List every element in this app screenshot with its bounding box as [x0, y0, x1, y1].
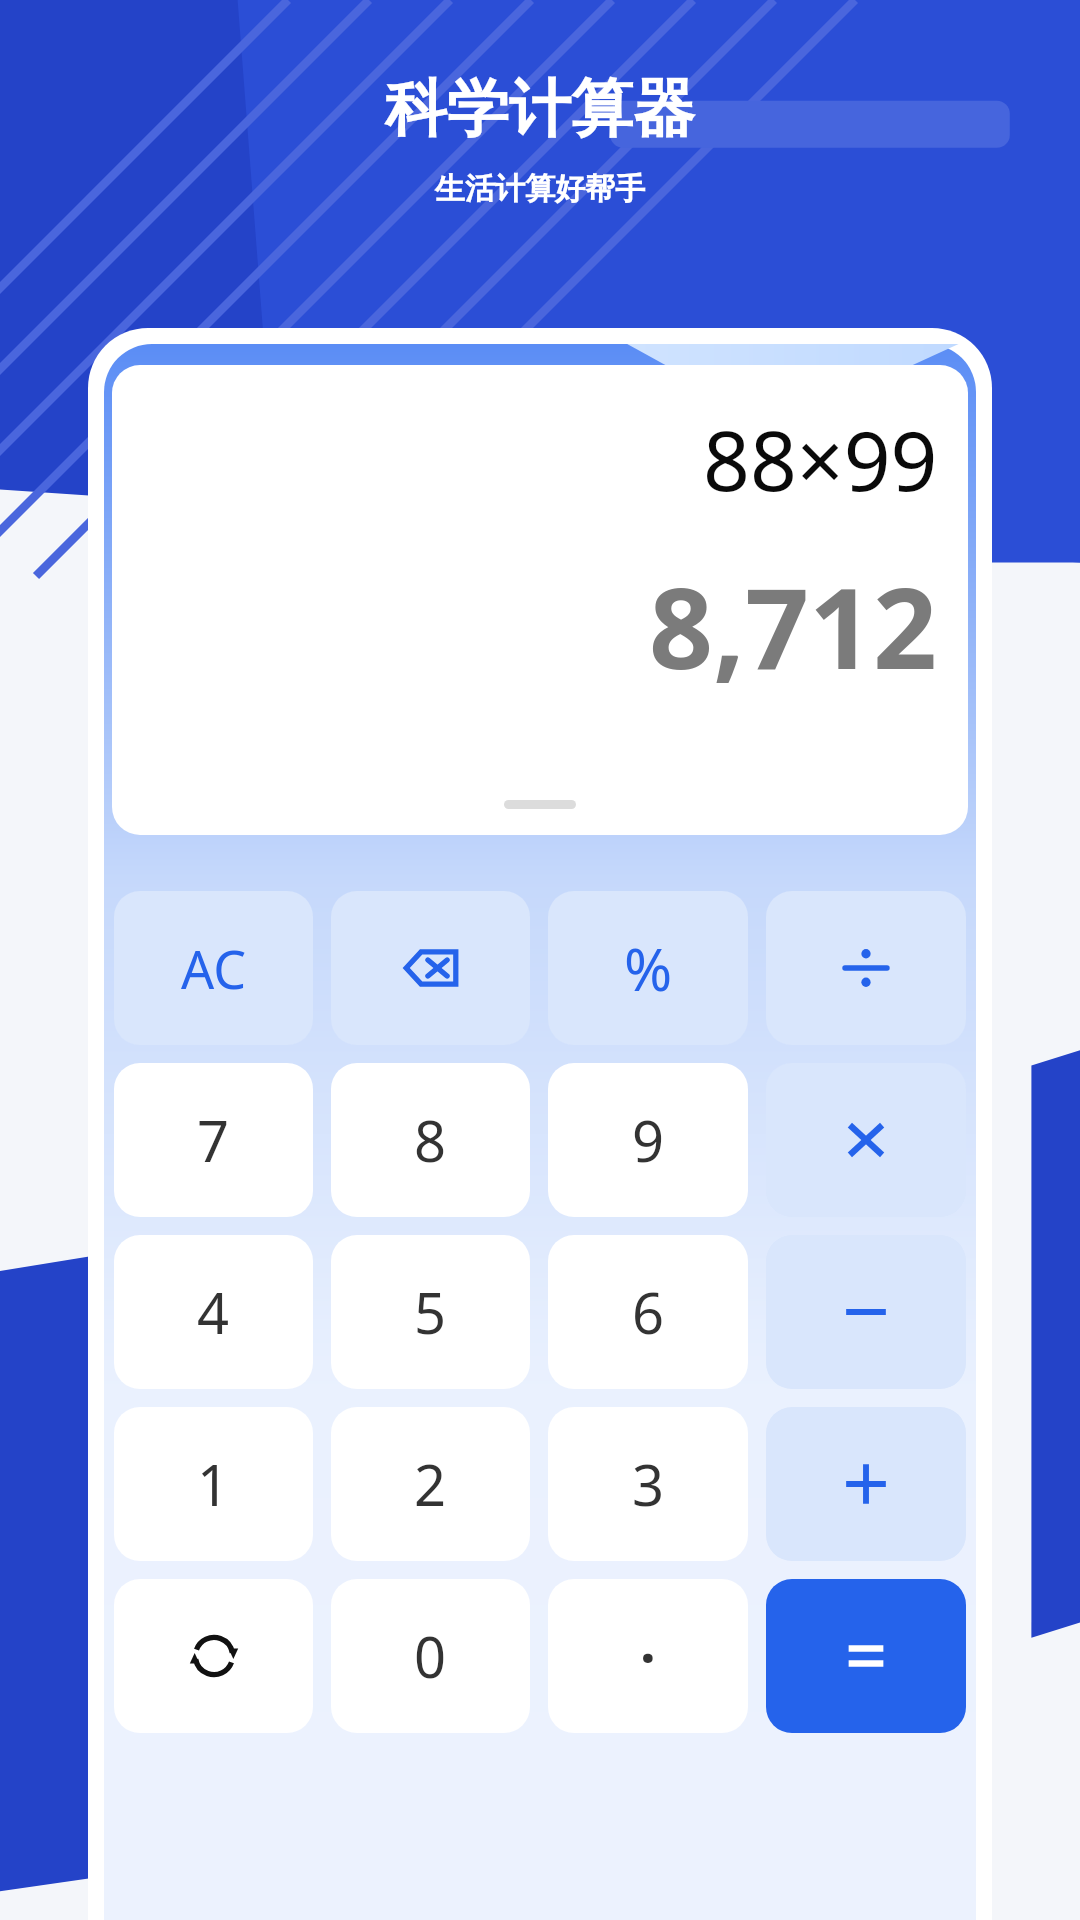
button[interactable]: Minus: [766, 1235, 966, 1389]
button[interactable]: AC: [114, 891, 313, 1045]
button[interactable]: ·: [548, 1579, 748, 1733]
staticText: ·: [640, 1618, 656, 1694]
staticText: 6: [632, 1274, 665, 1350]
staticText: 7: [197, 1102, 230, 1178]
staticText: 科学计算器: [385, 70, 695, 148]
button[interactable]: Plus: [766, 1407, 966, 1561]
button[interactable]: 0: [331, 1579, 530, 1733]
staticText: 8,712: [649, 549, 938, 702]
button[interactable]: 1: [114, 1407, 313, 1561]
button[interactable]: Equals: [766, 1579, 966, 1733]
button[interactable]: 5: [331, 1235, 530, 1389]
staticText: 2: [414, 1446, 447, 1522]
button[interactable]: 6: [548, 1235, 748, 1389]
staticText: 5: [414, 1274, 447, 1350]
button[interactable]: Convert: [114, 1579, 313, 1733]
staticText: 0: [414, 1618, 447, 1694]
staticText: AC: [181, 933, 247, 1004]
button[interactable]: 3: [548, 1407, 748, 1561]
button[interactable]: 7: [114, 1063, 313, 1217]
button[interactable]: 2: [331, 1407, 530, 1561]
staticText: 9: [632, 1102, 665, 1178]
staticText: 1: [197, 1446, 230, 1522]
button[interactable]: %: [548, 891, 748, 1045]
staticText: %: [624, 929, 673, 1008]
staticText: 生活计算好帮手: [435, 170, 645, 208]
button[interactable]: 4: [114, 1235, 313, 1389]
button[interactable]: 8: [331, 1063, 530, 1217]
button[interactable]: 9: [548, 1063, 748, 1217]
staticText: 4: [197, 1274, 230, 1350]
staticText: 88×99: [703, 403, 938, 515]
button[interactable]: Multiply: [766, 1063, 966, 1217]
button[interactable]: Backspace: [331, 891, 530, 1045]
button[interactable]: Divide: [766, 891, 966, 1045]
staticText: 8: [414, 1102, 447, 1178]
staticText: 3: [632, 1446, 665, 1522]
